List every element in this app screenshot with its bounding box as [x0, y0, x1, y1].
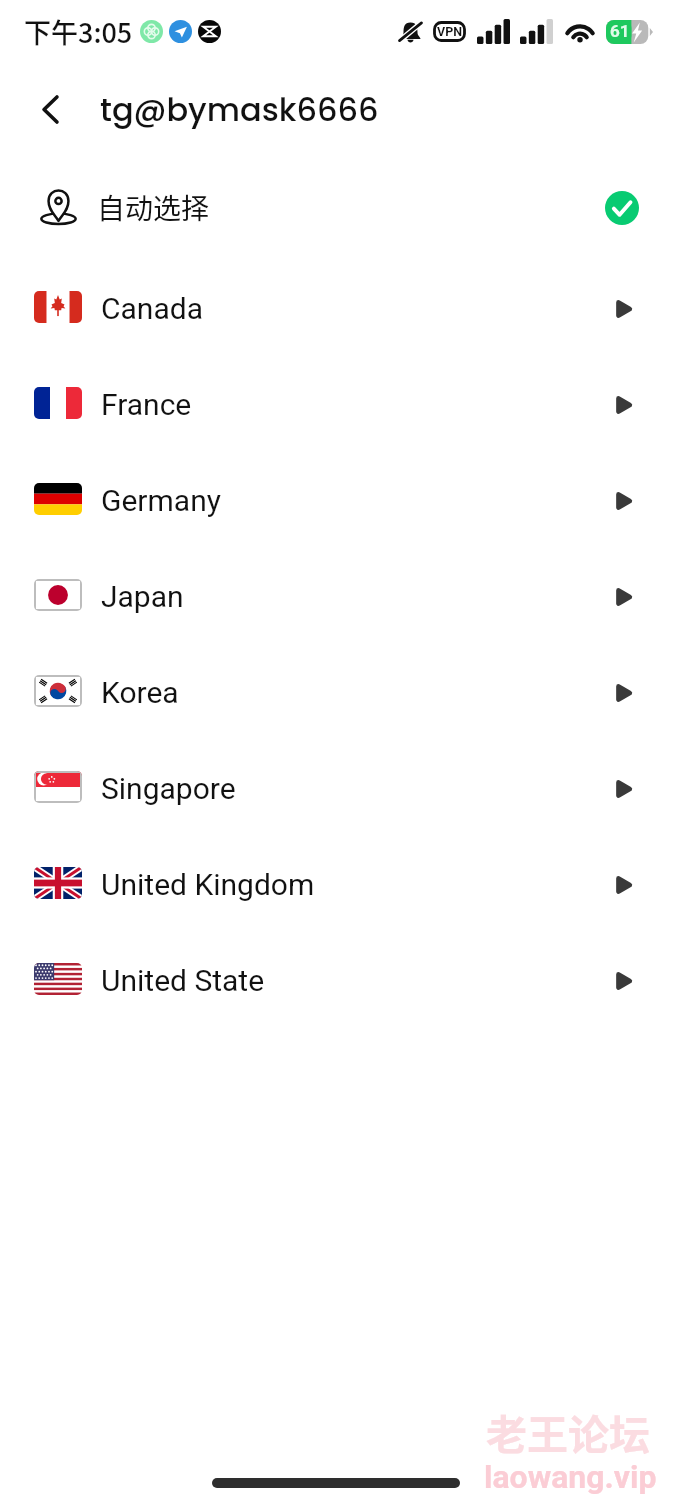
other: Selected — [605, 191, 639, 225]
staticText: 下午3:05 — [24, 12, 133, 51]
button[interactable]: Japan — [0, 548, 675, 644]
staticText: laowang.vip — [484, 1458, 657, 1496]
button[interactable]: Canada — [0, 260, 675, 356]
button[interactable]: 自动选择 — [0, 164, 675, 260]
button[interactable]: Germany — [0, 452, 675, 548]
button[interactable]: Singapore — [0, 740, 675, 836]
staticText: tg@bymask6666 — [100, 87, 379, 132]
staticText: 自动选择 — [97, 187, 210, 228]
button[interactable]: France — [0, 356, 675, 452]
staticText: United State — [101, 963, 265, 998]
staticText: Germany — [101, 483, 221, 518]
button[interactable]: United State — [0, 932, 675, 1028]
staticText: Japan — [101, 579, 184, 614]
staticText: Korea — [101, 675, 179, 710]
staticText: VPN — [437, 24, 463, 39]
button[interactable]: United Kingdom — [0, 836, 675, 932]
staticText: 61 — [610, 21, 630, 41]
button[interactable]: Back — [22, 81, 78, 137]
staticText: United Kingdom — [101, 867, 315, 902]
staticText: 老王论坛 — [486, 1402, 650, 1461]
button[interactable]: Korea — [0, 644, 675, 740]
staticText: France — [101, 387, 192, 422]
staticText: Singapore — [101, 771, 236, 806]
staticText: Canada — [101, 291, 203, 326]
